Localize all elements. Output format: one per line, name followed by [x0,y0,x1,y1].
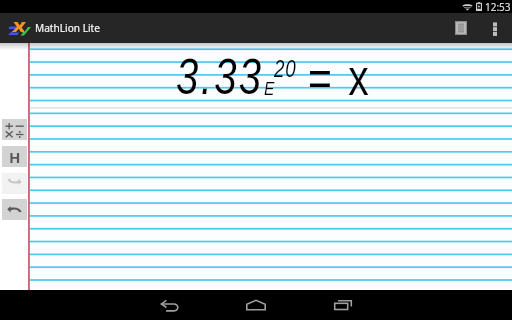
staticText: E [264,78,275,99]
staticText: 3.33 [176,49,264,105]
button[interactable]: Hex mode [2,146,27,167]
staticText: = x [308,50,372,106]
staticText: MathLion Lite [35,20,100,36]
button[interactable]: More options [484,13,506,43]
staticText: 20 [274,56,297,82]
button[interactable]: Back [148,290,192,320]
button[interactable]: Undo [2,199,27,220]
button[interactable]: Redo [2,173,27,194]
button[interactable]: Recents [321,290,365,320]
button[interactable]: Operators [2,119,27,140]
button[interactable]: Home [234,290,278,320]
staticText: H [9,147,21,167]
button[interactable]: History [446,13,476,43]
staticText: 12:53 [485,0,511,13]
